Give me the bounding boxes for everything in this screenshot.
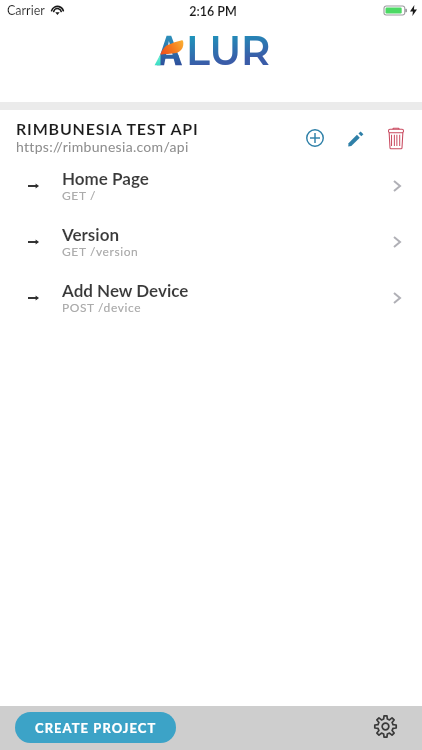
button[interactable]: Settings — [370, 710, 402, 742]
staticText: https://rimbunesia.com/api — [16, 138, 189, 155]
staticText: RIMBUNESIA TEST API — [16, 119, 199, 138]
staticText: Home Page — [62, 168, 149, 188]
button[interactable]: Home Page — [0, 157, 422, 213]
staticText: Carrier — [7, 3, 45, 18]
button[interactable]: Add request — [301, 124, 329, 152]
staticText: Add New Device — [62, 280, 189, 300]
button[interactable]: Add New Device — [0, 269, 422, 325]
staticText: Version — [62, 224, 119, 244]
button[interactable]: CREATE PROJECT — [15, 712, 176, 743]
staticText: POST /device — [62, 300, 142, 314]
button[interactable]: Version — [0, 213, 422, 269]
staticText: 2:16 PM — [2, 4, 422, 19]
staticText: GET / — [62, 188, 96, 202]
button[interactable]: Edit project — [342, 124, 370, 152]
staticText: CREATE PROJECT — [35, 720, 157, 736]
staticText: GET /version — [62, 244, 139, 258]
button[interactable]: Delete project — [381, 121, 411, 155]
staticText: LUR — [186, 26, 271, 75]
